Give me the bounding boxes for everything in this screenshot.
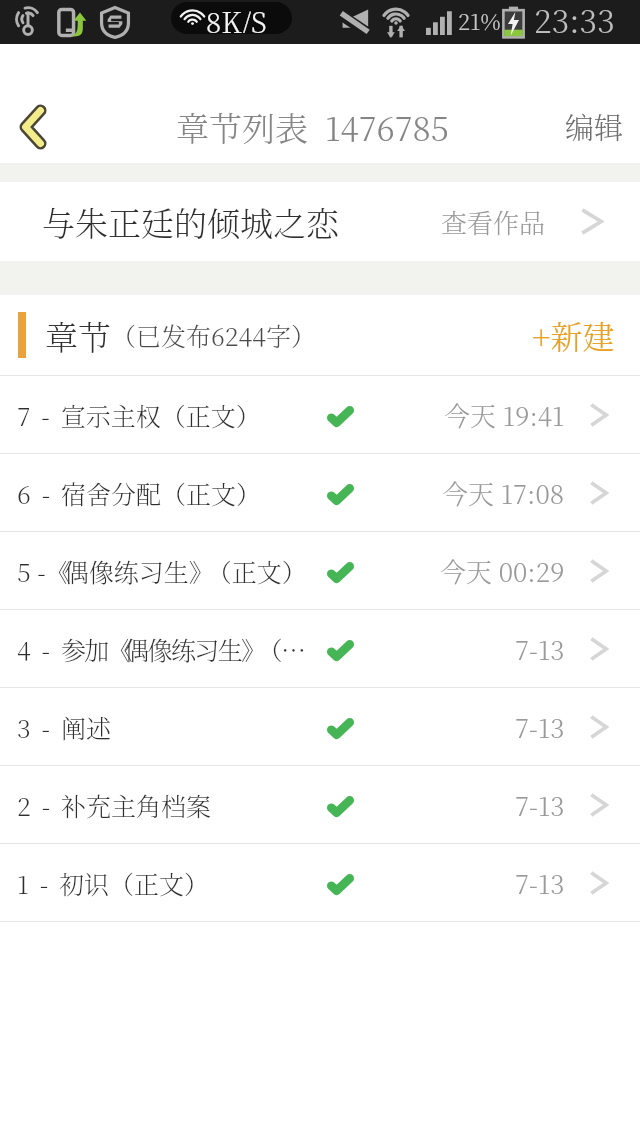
staticText: 5 -《偶像练习生》（正文） [17, 553, 307, 589]
staticText: 章节列表 1476785 [176, 103, 449, 150]
staticText: 今天 17:08 [442, 474, 565, 511]
staticText: 4 - 参加《偶像练习生》（… [17, 631, 305, 667]
staticText: 查看作品 [441, 203, 546, 240]
staticText: 今天 00:29 [440, 552, 565, 589]
staticText: 23:33 [534, 0, 615, 40]
staticText: 与朱正廷的倾城之恋 [42, 198, 339, 245]
button[interactable]: 与朱正廷的倾城之恋 [0, 182, 640, 261]
staticText: 今天 19:41 [444, 396, 565, 433]
staticText: 7-13 [515, 708, 565, 745]
staticText: 章节 [45, 312, 111, 359]
button[interactable]: 3 - 阐述 [0, 688, 640, 765]
staticText: +新建 [532, 312, 615, 358]
staticText: 3 - 阐述 [17, 709, 111, 745]
button[interactable]: 7 - 宣示主权（正文） [0, 376, 640, 453]
button[interactable]: +新建 [508, 295, 640, 375]
staticText: 7-13 [515, 864, 565, 901]
button[interactable]: 4 - 参加《偶像练习生》（… [0, 610, 640, 687]
button[interactable]: 5 -《偶像练习生》（正文） [0, 532, 640, 609]
button[interactable]: 6 - 宿舍分配（正文） [0, 454, 640, 531]
button[interactable]: 2 - 补充主角档案 [0, 766, 640, 843]
staticText: 编辑 [565, 106, 624, 148]
staticText: 2 - 补充主角档案 [17, 787, 211, 823]
staticText: 21% [458, 5, 501, 37]
staticText: 7-13 [515, 630, 565, 667]
staticText: 8K/S [206, 2, 267, 33]
button[interactable]: 1 - 初识（正文） [0, 844, 640, 921]
button[interactable]: 编辑 [541, 89, 640, 165]
staticText: 1 - 初识（正文） [17, 865, 210, 901]
button[interactable]: Back [0, 89, 74, 165]
staticText: 7 - 宣示主权（正文） [17, 397, 261, 433]
staticText: 6 - 宿舍分配（正文） [17, 475, 261, 511]
staticText: （已发布6244字） [111, 317, 316, 353]
staticText: 7-13 [515, 786, 565, 823]
